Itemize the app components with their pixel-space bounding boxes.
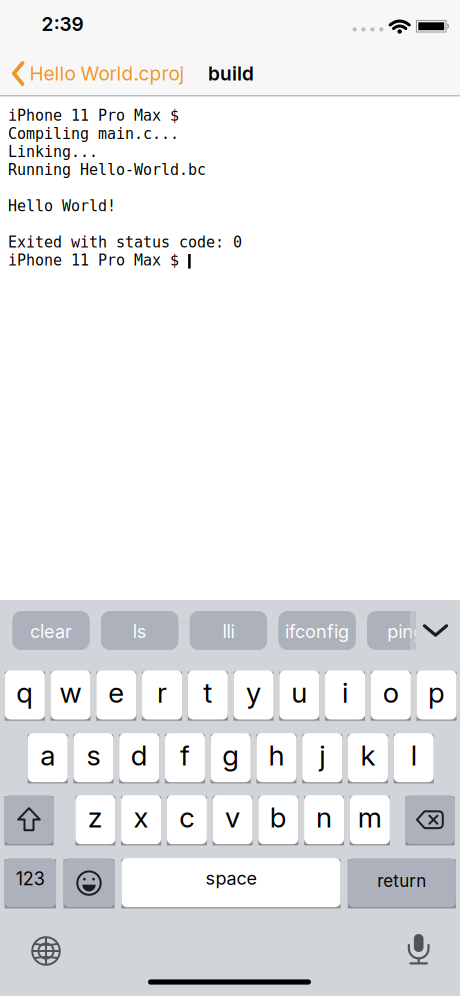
staticText: e xyxy=(108,676,124,709)
button[interactable]: u xyxy=(279,670,319,719)
staticText: q xyxy=(16,676,33,709)
staticText: Exited with status code: 0 xyxy=(8,234,242,251)
staticText: b xyxy=(270,800,287,834)
button[interactable]: clear xyxy=(12,611,90,650)
button[interactable]: space xyxy=(121,858,340,907)
button[interactable]: Delete xyxy=(405,795,454,844)
staticText: lli xyxy=(222,621,234,642)
button[interactable]: Dictation xyxy=(395,926,443,974)
staticText: build xyxy=(208,62,254,85)
staticText: ls xyxy=(133,621,147,642)
staticText: x xyxy=(134,800,149,834)
button[interactable]: e xyxy=(96,670,136,719)
button[interactable]: Shift xyxy=(4,795,53,844)
staticText: h xyxy=(268,738,284,772)
staticText: Hello World! xyxy=(8,197,116,215)
button[interactable]: Dismiss Keyboard xyxy=(414,610,456,650)
staticText: g xyxy=(222,738,239,772)
staticText: Hello World.cproj xyxy=(29,62,184,85)
staticText: v xyxy=(225,800,240,834)
staticText: s xyxy=(86,738,100,772)
button[interactable]: m xyxy=(350,795,390,844)
staticText: return xyxy=(377,870,426,891)
button[interactable]: return xyxy=(348,858,456,907)
button[interactable]: z xyxy=(75,795,115,844)
staticText: z xyxy=(88,800,103,834)
button[interactable]: r xyxy=(142,670,182,719)
staticText: n xyxy=(316,800,332,834)
staticText: u xyxy=(291,676,307,709)
button[interactable]: i xyxy=(325,670,365,719)
button[interactable]: ls xyxy=(101,611,178,650)
staticText: space xyxy=(205,867,256,889)
staticText: l xyxy=(411,738,417,772)
button[interactable]: o xyxy=(371,670,411,719)
staticText: r xyxy=(157,676,167,709)
button[interactable]: Next Keyboard xyxy=(22,927,70,975)
staticText: 2:39 xyxy=(41,12,83,35)
staticText: a xyxy=(40,738,55,772)
staticText: f xyxy=(180,738,190,772)
staticText: k xyxy=(360,738,375,772)
button[interactable]: g xyxy=(211,733,251,782)
button[interactable]: n xyxy=(304,795,344,844)
staticText: m xyxy=(358,800,382,834)
staticText: w xyxy=(59,676,81,709)
staticText: Linking... xyxy=(8,143,98,161)
staticText: o xyxy=(383,676,399,709)
staticText: t xyxy=(203,676,212,709)
staticText: y xyxy=(246,676,261,709)
button[interactable]: h xyxy=(256,733,296,782)
staticText: ping xyxy=(387,621,424,642)
button[interactable]: d xyxy=(119,733,159,782)
button[interactable]: ping xyxy=(367,611,445,650)
staticText: j xyxy=(319,738,325,772)
staticText: Compiling main.c... xyxy=(8,125,179,142)
staticText: d xyxy=(131,738,148,772)
button[interactable]: q xyxy=(5,670,45,719)
button[interactable]: p xyxy=(417,670,457,719)
staticText: 123 xyxy=(16,868,45,890)
button[interactable]: 123 xyxy=(5,858,56,907)
button[interactable]: t xyxy=(188,670,228,719)
button[interactable]: ifconfig xyxy=(278,611,356,650)
button[interactable]: c xyxy=(167,795,207,844)
button[interactable]: v xyxy=(213,795,253,844)
staticText: clear xyxy=(30,621,72,642)
button[interactable]: f xyxy=(165,733,205,782)
staticText: p xyxy=(428,676,445,709)
button[interactable]: j xyxy=(302,733,342,782)
button[interactable]: l xyxy=(394,733,434,782)
staticText: iPhone 11 Pro Max $ xyxy=(8,252,179,269)
button[interactable]: y xyxy=(234,670,274,719)
button[interactable]: a xyxy=(28,733,68,782)
button[interactable]: s xyxy=(73,733,113,782)
button[interactable]: lli xyxy=(190,611,267,650)
button[interactable]: x xyxy=(121,795,161,844)
staticText: ifconfig xyxy=(285,621,349,642)
button[interactable]: Hello World.cproj xyxy=(12,52,192,94)
staticText: i xyxy=(342,676,348,709)
button[interactable]: w xyxy=(50,670,90,719)
button[interactable]: k xyxy=(348,733,388,782)
staticText: iPhone 11 Pro Max $ xyxy=(8,107,179,124)
button[interactable]: Emoji xyxy=(63,858,114,907)
staticText: c xyxy=(179,800,194,834)
button[interactable]: b xyxy=(258,795,298,844)
staticText: Running Hello-World.bc xyxy=(8,161,206,179)
